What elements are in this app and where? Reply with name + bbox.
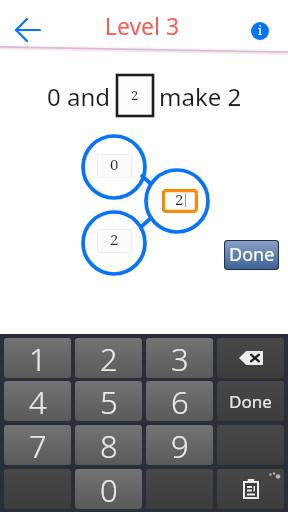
button[interactable]: [146, 469, 213, 509]
staticText: 5: [100, 381, 118, 421]
button[interactable]: 2: [97, 229, 132, 253]
staticText: 6: [171, 381, 189, 421]
button[interactable]: 8: [75, 425, 142, 465]
button[interactable]: 2: [117, 75, 153, 116]
button[interactable]: 6: [146, 381, 213, 421]
staticText: 1: [29, 338, 47, 378]
button[interactable]: Back: [10, 16, 42, 44]
button[interactable]: 7: [4, 425, 71, 465]
staticText: 2: [110, 229, 119, 249]
staticText: Done: [229, 242, 275, 267]
staticText: Done: [229, 390, 272, 413]
staticText: 0 and: [47, 80, 111, 113]
staticText: 0: [110, 154, 119, 174]
staticText: 0: [100, 469, 118, 509]
staticText: make 2: [159, 80, 242, 113]
button[interactable]: 0: [97, 154, 132, 178]
staticText: 3: [171, 338, 189, 378]
staticText: 9: [171, 425, 189, 465]
button[interactable]: 2: [75, 338, 142, 378]
staticText: 7: [29, 425, 47, 465]
button[interactable]: 2: [162, 189, 198, 213]
staticText: 4: [29, 381, 47, 421]
button[interactable]: 9: [146, 425, 213, 465]
button[interactable]: Done: [217, 381, 284, 421]
button[interactable]: 4: [4, 381, 71, 421]
button[interactable]: 0: [75, 469, 142, 509]
staticText: 8: [100, 425, 118, 465]
staticText: 2: [131, 86, 139, 104]
button[interactable]: Backspace: [217, 338, 284, 378]
button[interactable]: Switch keyboard: [217, 469, 284, 509]
button[interactable]: Info: [251, 22, 269, 40]
button[interactable]: 5: [75, 381, 142, 421]
button[interactable]: Done: [224, 240, 279, 270]
staticText: i: [258, 21, 263, 39]
button[interactable]: 3: [146, 338, 213, 378]
button[interactable]: [4, 469, 71, 509]
staticText: 2: [175, 189, 184, 209]
staticText: 2: [100, 338, 118, 378]
staticText: Level 3: [0, 10, 286, 41]
button[interactable]: [217, 425, 284, 465]
button[interactable]: 1: [4, 338, 71, 378]
